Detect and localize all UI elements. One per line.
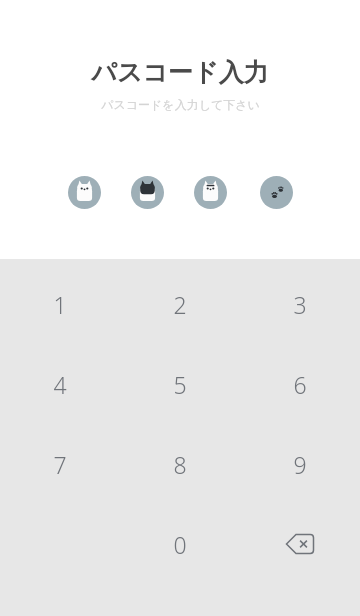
button[interactable]: 1: [0, 264, 120, 344]
button[interactable]: Passcode digit 3: [194, 176, 227, 209]
button[interactable]: 3: [240, 264, 360, 344]
button[interactable]: 4: [0, 344, 120, 424]
staticText: 6: [293, 369, 307, 400]
staticText: パスコードを入力して下さい: [101, 97, 260, 112]
staticText: 4: [53, 369, 67, 400]
button[interactable]: Passcode digit 2: [131, 176, 164, 209]
staticText: 9: [293, 449, 307, 480]
button[interactable]: Passcode digit 1: [68, 176, 101, 209]
button[interactable]: 6: [240, 344, 360, 424]
staticText: 5: [173, 369, 187, 400]
button[interactable]: 7: [0, 424, 120, 504]
button[interactable]: Passcode digit 4: [260, 176, 293, 209]
button[interactable]: 9: [240, 424, 360, 504]
staticText: 2: [173, 289, 187, 320]
button[interactable]: 2: [120, 264, 240, 344]
staticText: 3: [293, 289, 307, 320]
staticText: 8: [173, 449, 187, 480]
staticText: パスコード入力: [91, 57, 269, 88]
button[interactable]: 0: [120, 504, 240, 584]
button[interactable]: Backspace: [240, 504, 360, 584]
staticText: 1: [53, 289, 67, 320]
button[interactable]: 8: [120, 424, 240, 504]
staticText: 0: [173, 529, 187, 560]
staticText: 7: [53, 449, 67, 480]
button[interactable]: 5: [120, 344, 240, 424]
